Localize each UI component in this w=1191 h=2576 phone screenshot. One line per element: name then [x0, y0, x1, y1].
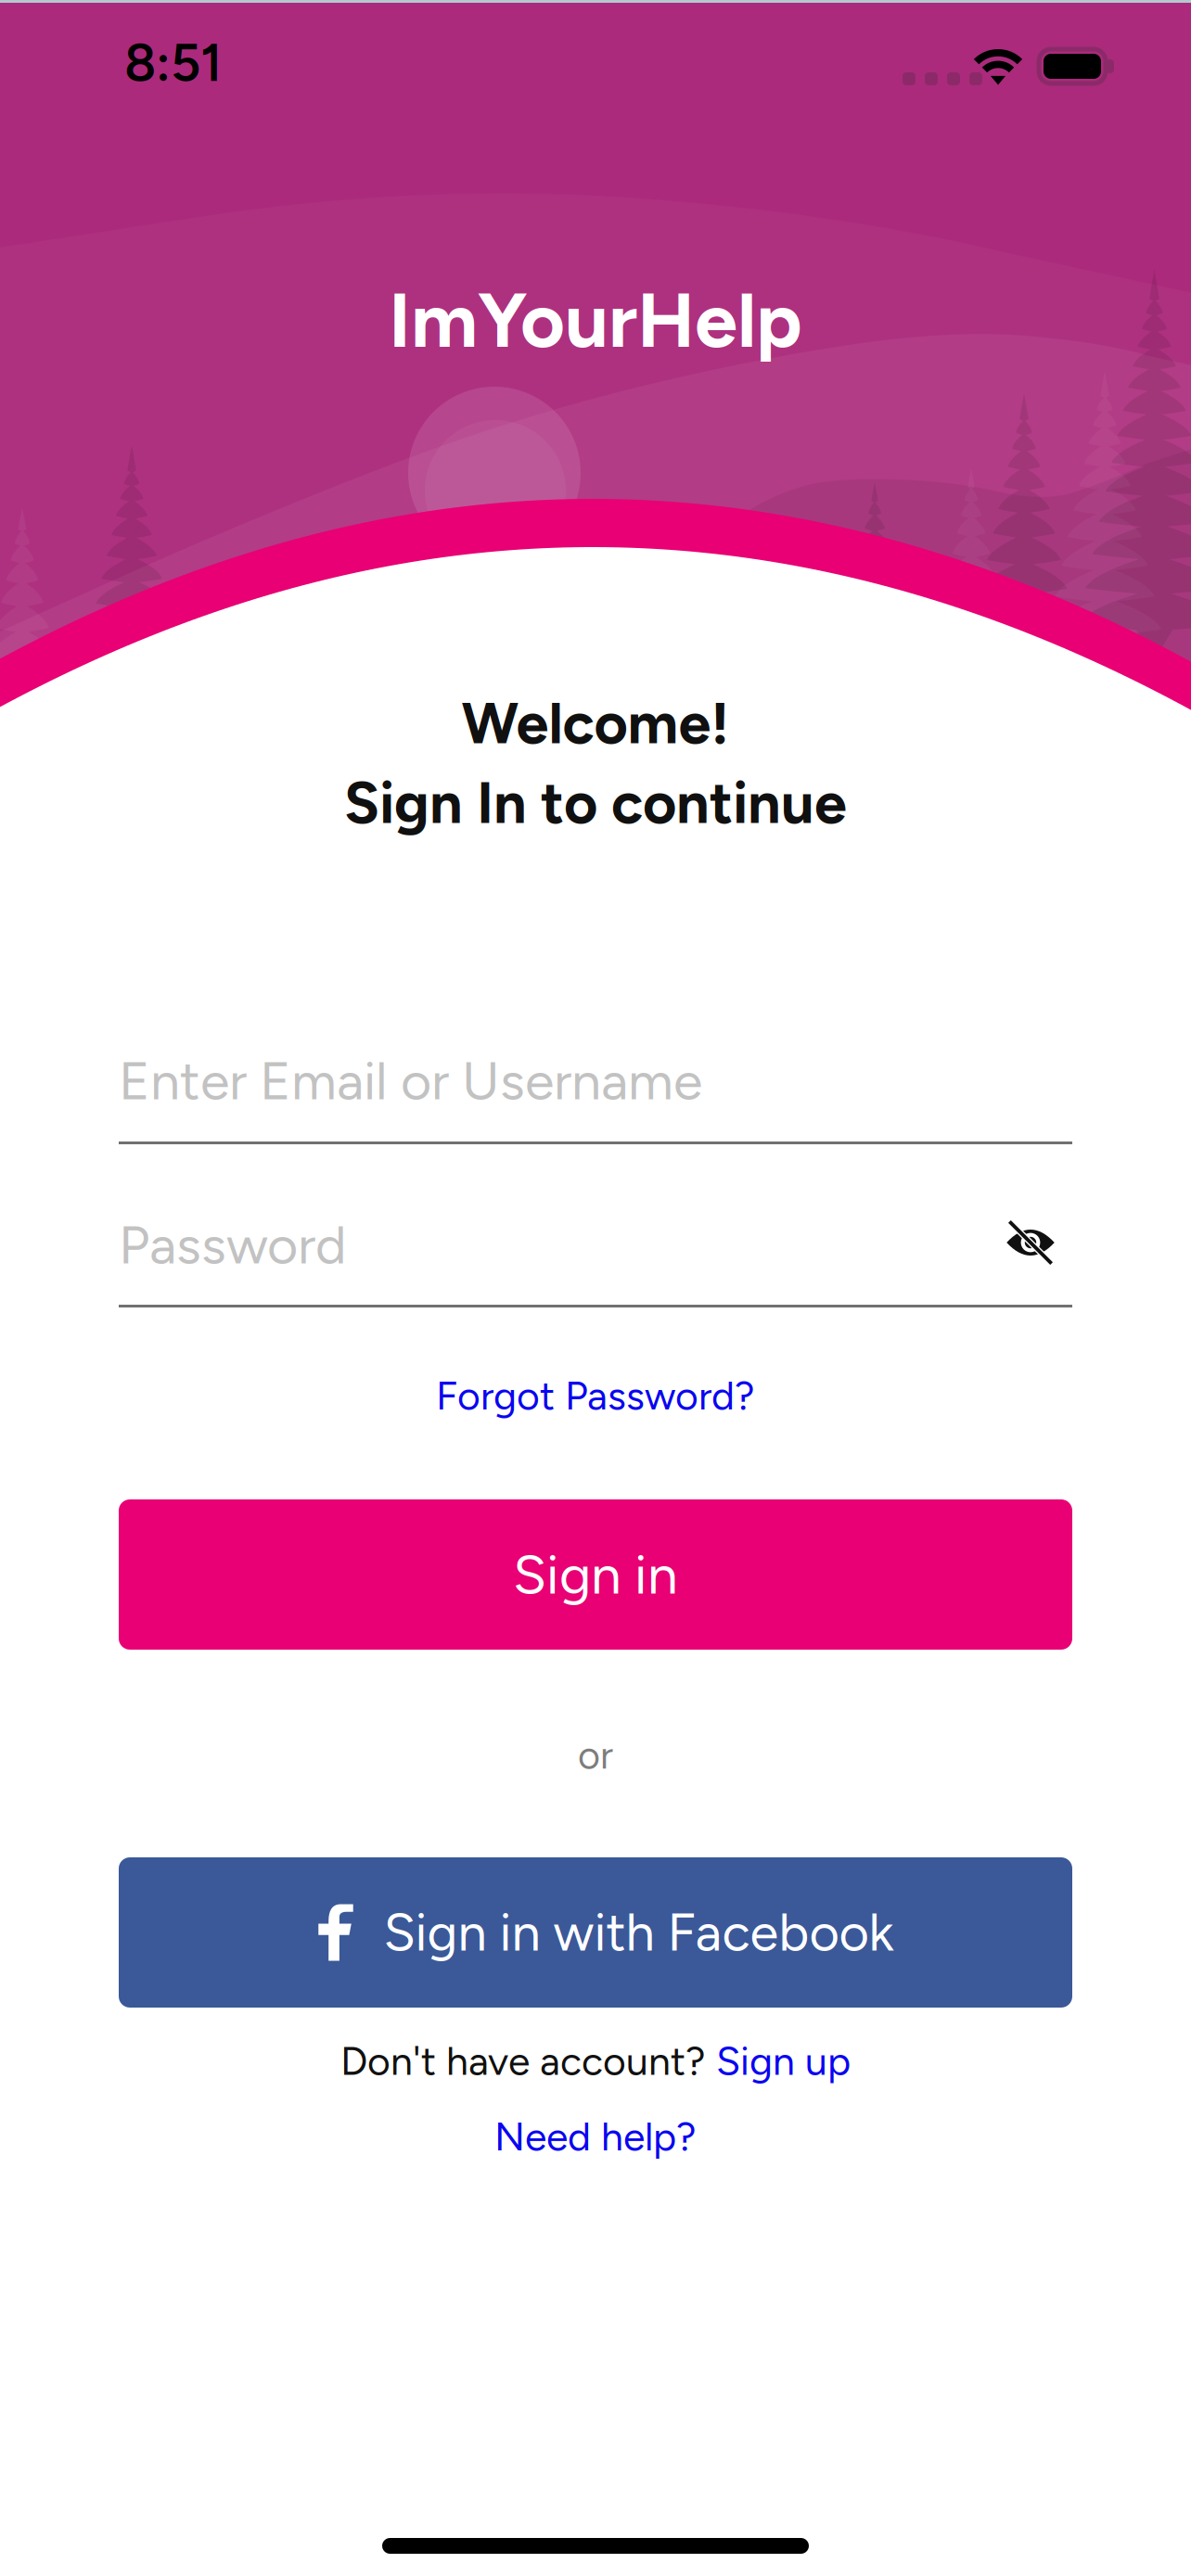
button[interactable]: Forgot Password?: [382, 1361, 809, 1430]
button[interactable]: Sign up: [716, 2037, 851, 2085]
staticText: or: [578, 1732, 613, 1778]
button[interactable]: Show password: [980, 1192, 1082, 1294]
staticText: Need help?: [494, 2113, 697, 2160]
staticText: Sign in with Facebook: [384, 1901, 894, 1964]
staticText: Sign In to continue: [344, 768, 847, 838]
button[interactable]: Sign in with Facebook: [119, 1857, 1072, 2008]
staticText: Sign in: [513, 1542, 678, 1607]
button[interactable]: Sign in: [119, 1499, 1072, 1650]
staticText: Password: [119, 1213, 347, 1277]
staticText: ImYourHelp: [389, 274, 802, 366]
staticText: 8:51: [124, 32, 222, 94]
staticText: Welcome!: [461, 688, 730, 758]
staticText: Enter Email or Username: [119, 1049, 702, 1113]
staticText: Sign up: [716, 2037, 851, 2085]
button[interactable]: Need help?: [447, 2102, 744, 2171]
staticText: Don't have account?: [340, 2037, 716, 2085]
staticText: Forgot Password?: [436, 1372, 755, 1419]
